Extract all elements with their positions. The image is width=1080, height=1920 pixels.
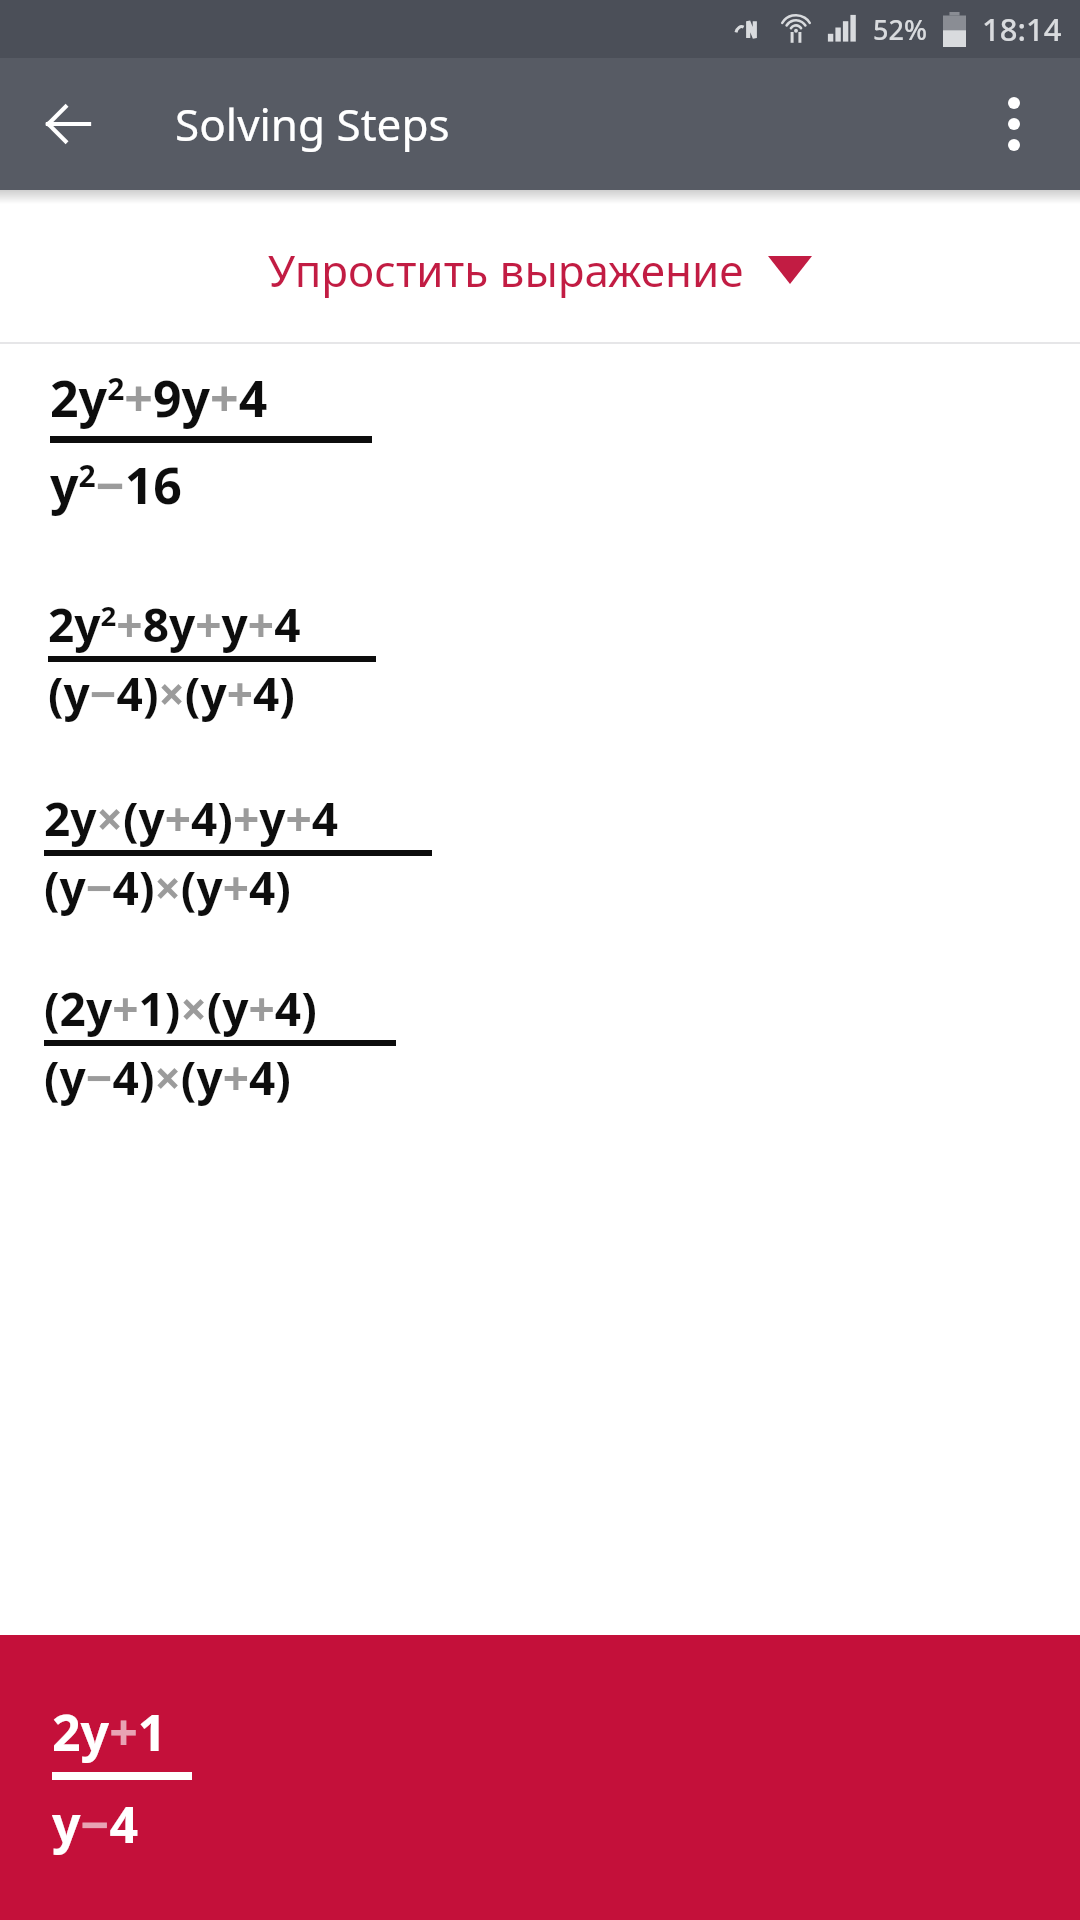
button[interactable]: 2y2+9y+4 [0, 364, 1080, 519]
staticText: 18:14 [982, 8, 1062, 50]
button[interactable]: Back [22, 78, 114, 170]
button[interactable]: More options [968, 78, 1060, 170]
staticText: 2y2+8y+y+4 [48, 593, 301, 656]
staticText: y−4 [52, 1790, 139, 1858]
staticText: (y−4)×(y+4) [44, 856, 291, 919]
button[interactable]: 2y2+8y+y+4 [0, 593, 1080, 725]
staticText: (y−4)×(y+4) [48, 662, 295, 725]
staticText: Solving Steps [175, 94, 450, 154]
staticText: y2−16 [50, 451, 182, 519]
staticText: 52% [873, 11, 927, 48]
staticText: 2y+1 [52, 1698, 167, 1766]
button[interactable]: 2y+1 [0, 1635, 1080, 1920]
staticText: 2y2+9y+4 [50, 364, 268, 432]
staticText: 2y×(y+4)+y+4 [44, 787, 339, 850]
staticText: (y−4)×(y+4) [44, 1046, 291, 1109]
staticText: Упростить выражение [268, 240, 744, 300]
staticText: (2y+1)×(y+4) [44, 977, 317, 1040]
button[interactable]: 2y×(y+4)+y+4 [0, 787, 1080, 919]
button[interactable]: (2y+1)×(y+4) [0, 977, 1080, 1109]
button[interactable]: Упростить выражение [0, 236, 1080, 304]
